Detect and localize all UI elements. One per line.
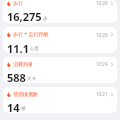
button[interactable]: 歩行 + 走行距離 11.1 公里 <box>3 27 117 53</box>
staticText: 歩行 + 走行距離 <box>13 31 49 38</box>
button[interactable]: 登階樓層數 14 層 <box>3 87 117 113</box>
staticText: 消費熱量 <box>13 61 33 67</box>
staticText: 10:21 <box>96 91 108 97</box>
button[interactable]: 消費熱量 588 大卡 <box>3 57 117 83</box>
staticText: 10:26 <box>96 32 108 38</box>
staticText: 11.1 <box>7 41 29 53</box>
staticText: 14 <box>7 100 20 113</box>
staticText: 層 <box>21 106 26 112</box>
button[interactable]: 歩行 16,275 歩 <box>3 0 117 23</box>
staticText: 大卡 <box>27 76 36 82</box>
staticText: 10:24 <box>96 61 108 67</box>
staticText: 10:26 <box>96 0 108 6</box>
staticText: 588 <box>7 70 26 83</box>
staticText: 歩行 <box>13 0 23 6</box>
staticText: 16,275 <box>7 9 42 23</box>
staticText: 登階樓層數 <box>13 91 38 97</box>
staticText: 公里 <box>30 46 39 52</box>
staticText: 歩 <box>43 16 48 22</box>
